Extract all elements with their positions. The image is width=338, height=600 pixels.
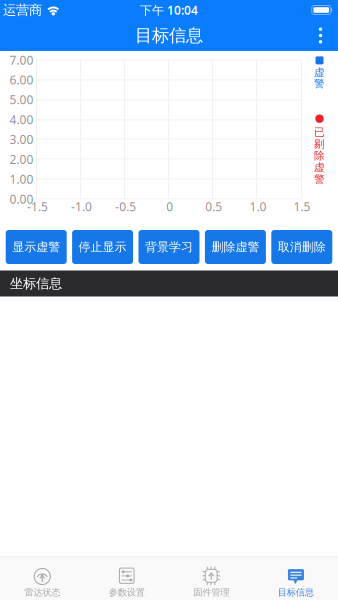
staticText: 4.00 xyxy=(9,112,33,127)
staticText: 虚 xyxy=(314,66,325,79)
button[interactable]: 参数设置 xyxy=(84,557,169,600)
staticText: 1.00 xyxy=(9,171,33,187)
staticText: 0.5 xyxy=(205,198,222,214)
staticText: 警 xyxy=(314,172,325,186)
staticText: 7.00 xyxy=(9,52,33,68)
button[interactable]: 固件管理 xyxy=(169,557,253,600)
button[interactable]: 取消删除 xyxy=(271,230,332,264)
staticText: 运营商 xyxy=(3,2,42,18)
staticText: 0.00 xyxy=(9,191,33,207)
staticText: 背景学习 xyxy=(145,240,193,254)
staticText: 已 xyxy=(314,126,325,139)
button[interactable]: 停止显示 xyxy=(72,230,133,264)
staticText: -1.5 xyxy=(27,198,48,214)
staticText: 除 xyxy=(314,149,325,162)
staticText: 取消删除 xyxy=(278,240,326,254)
button[interactable]: 删除虚警 xyxy=(205,230,266,264)
staticText: 下午 10:04 xyxy=(140,2,198,18)
button[interactable]: 背景学习 xyxy=(138,230,199,264)
staticText: 坐标信息 xyxy=(10,275,62,292)
staticText: 0 xyxy=(166,198,173,214)
staticText: 1.5 xyxy=(293,198,310,214)
button[interactable]: 更多 xyxy=(305,20,338,51)
button[interactable]: 目标信息 xyxy=(253,557,338,600)
staticText: -0.5 xyxy=(115,198,136,214)
staticText: 1.0 xyxy=(249,198,266,214)
staticText: 剔 xyxy=(314,137,325,150)
staticText: 6.00 xyxy=(9,72,33,88)
staticText: 3.00 xyxy=(9,131,33,147)
staticText: 停止显示 xyxy=(79,240,127,254)
staticText: 固件管理 xyxy=(193,587,229,598)
button[interactable]: 雷达状态 xyxy=(0,557,84,600)
staticText: 5.00 xyxy=(9,92,33,108)
staticText: 删除虚警 xyxy=(211,240,259,254)
staticText: 目标信息 xyxy=(135,25,203,46)
staticText: 目标信息 xyxy=(278,587,314,598)
staticText: 显示虚警 xyxy=(12,240,60,254)
button[interactable]: 显示虚警 xyxy=(6,230,67,264)
staticText: 警 xyxy=(314,77,325,90)
staticText: 2.00 xyxy=(9,151,33,167)
staticText: 雷达状态 xyxy=(24,587,60,598)
staticText: -1.0 xyxy=(71,198,92,214)
staticText: 参数设置 xyxy=(109,587,145,598)
staticText: 虚 xyxy=(314,161,325,174)
